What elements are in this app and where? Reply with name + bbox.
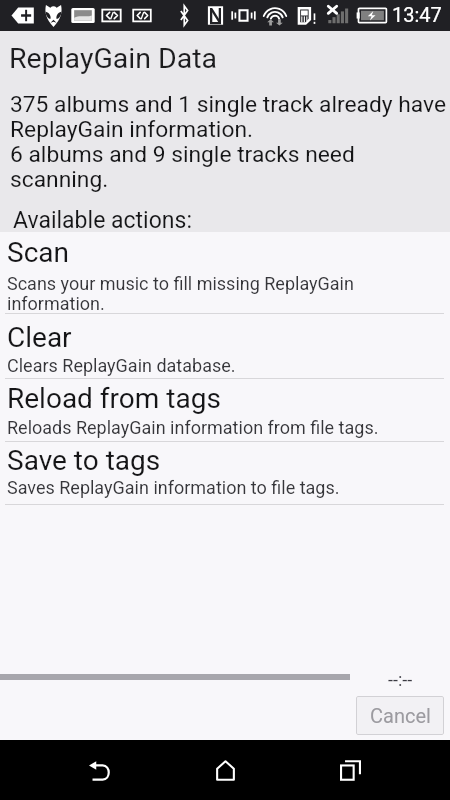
staticText: Reload from tags xyxy=(7,382,221,415)
button[interactable] xyxy=(0,378,450,441)
button[interactable]: Back xyxy=(50,740,150,800)
staticText: Scan xyxy=(7,236,69,269)
staticText: Saves ReplayGain information to file tag… xyxy=(7,477,445,498)
button[interactable] xyxy=(0,441,450,504)
staticText: Available actions: xyxy=(13,207,192,234)
button[interactable]: Recent apps xyxy=(300,740,400,800)
staticText: ReplayGain Data xyxy=(9,42,218,75)
button[interactable] xyxy=(0,313,450,378)
button[interactable]: Cancel xyxy=(356,696,444,735)
staticText: Save to tags xyxy=(7,444,161,477)
staticText: Clear xyxy=(7,321,72,354)
button[interactable] xyxy=(0,232,450,313)
staticText: 375 albums and 1 single track already ha… xyxy=(10,91,450,193)
button[interactable]: Home xyxy=(175,740,275,800)
staticText: Scans your music to fill missing ReplayG… xyxy=(7,273,445,315)
staticText: Clears ReplayGain database. xyxy=(7,355,445,376)
staticText: Reloads ReplayGain information from file… xyxy=(7,417,445,438)
staticText: --:-- xyxy=(388,669,413,690)
staticText: 13:47 xyxy=(392,3,442,26)
staticText: Cancel xyxy=(370,704,431,727)
